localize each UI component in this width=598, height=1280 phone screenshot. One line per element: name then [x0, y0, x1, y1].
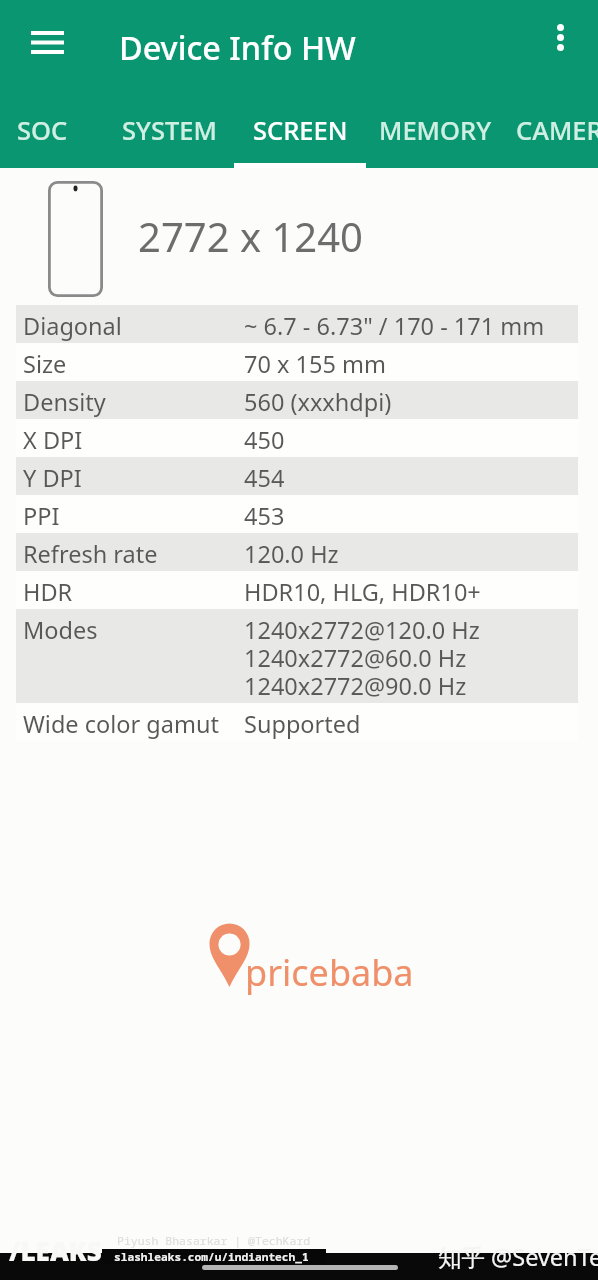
staticText: Density: [23, 389, 244, 417]
button[interactable]: X DPI: [16, 419, 578, 457]
staticText: PPI: [23, 503, 244, 531]
button[interactable]: MEMORY: [369, 95, 501, 168]
staticText: 70 x 155 mm: [244, 351, 386, 379]
staticText: CAMERA: [516, 113, 598, 148]
button[interactable]: SOC: [0, 95, 87, 168]
staticText: Diagonal: [23, 313, 244, 341]
staticText: Piyush Bhasarkar | @TechKard: [117, 1233, 311, 1249]
button[interactable]: Diagonal: [16, 305, 578, 343]
button[interactable]: HDR: [16, 571, 578, 609]
staticText: 2772 x 1240: [138, 209, 363, 263]
button[interactable]: Size: [16, 343, 578, 381]
staticText: X DPI: [23, 427, 244, 455]
button[interactable]: PPI: [16, 495, 578, 533]
staticText: Modes: [23, 617, 244, 645]
button[interactable]: Wide color gamut: [16, 703, 578, 741]
staticText: 454: [244, 465, 285, 493]
button[interactable]: Open navigation drawer: [15, 10, 80, 75]
button[interactable]: Y DPI: [16, 457, 578, 495]
button[interactable]: SCREEN: [234, 95, 366, 168]
button[interactable]: More options: [533, 10, 588, 65]
button[interactable]: SYSTEM: [103, 95, 235, 168]
staticText: 知乎 @SevenTech: [438, 1241, 598, 1273]
staticText: Supported: [244, 711, 361, 739]
staticText: SYSTEM: [122, 113, 217, 148]
staticText: pricebaba: [245, 948, 414, 997]
staticText: Wide color gamut: [23, 711, 244, 739]
button[interactable]: Refresh rate: [16, 533, 578, 571]
staticText: 1240x2772@120.0 Hz: [244, 617, 480, 645]
staticText: SCREEN: [253, 113, 348, 148]
staticText: Y DPI: [23, 465, 244, 493]
staticText: /LEAKS: [9, 1233, 102, 1268]
staticText: 1240x2772@90.0 Hz: [244, 673, 467, 701]
staticText: 450: [244, 427, 285, 455]
staticText: 453: [244, 503, 285, 531]
staticText: Size: [23, 351, 244, 379]
button[interactable]: Modes: [16, 609, 578, 703]
staticText: HDR: [23, 579, 244, 607]
staticText: 120.0 Hz: [244, 541, 339, 569]
staticText: Device Info HW: [119, 25, 356, 69]
staticText: 560 (xxxhdpi): [244, 389, 392, 417]
staticText: SOC: [17, 113, 68, 148]
staticText: 1240x2772@60.0 Hz: [244, 645, 467, 673]
staticText: HDR10, HLG, HDR10+: [244, 579, 481, 607]
staticText: slashleaks.com/u/indiantech_1: [114, 1249, 309, 1264]
staticText: MEMORY: [379, 113, 492, 148]
staticText: ~ 6.7 - 6.73" / 170 - 171 mm: [244, 313, 545, 341]
button[interactable]: Density: [16, 381, 578, 419]
staticText: Refresh rate: [23, 541, 244, 569]
button[interactable]: CAMERA: [502, 95, 598, 168]
